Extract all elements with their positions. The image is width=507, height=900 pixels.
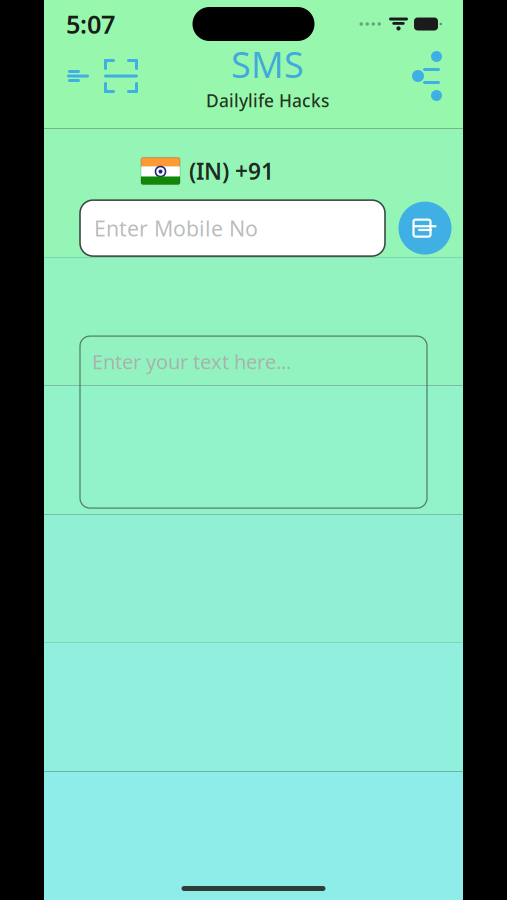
button[interactable]: Enter your text here... xyxy=(80,336,427,508)
staticText: Enter your text here... xyxy=(92,348,291,375)
staticText: SMS xyxy=(231,40,304,88)
button[interactable]: Scan xyxy=(98,54,144,98)
button[interactable]: Send xyxy=(397,200,453,256)
staticText: Enter Mobile No xyxy=(94,214,258,242)
staticText: Dailylife Hacks xyxy=(206,89,329,112)
button[interactable]: Share xyxy=(405,54,449,98)
staticText: 5:07 xyxy=(66,7,115,41)
button[interactable]: Back xyxy=(58,54,98,98)
button[interactable]: Enter Mobile No xyxy=(80,200,385,256)
staticText: (IN) +91 xyxy=(189,156,274,186)
